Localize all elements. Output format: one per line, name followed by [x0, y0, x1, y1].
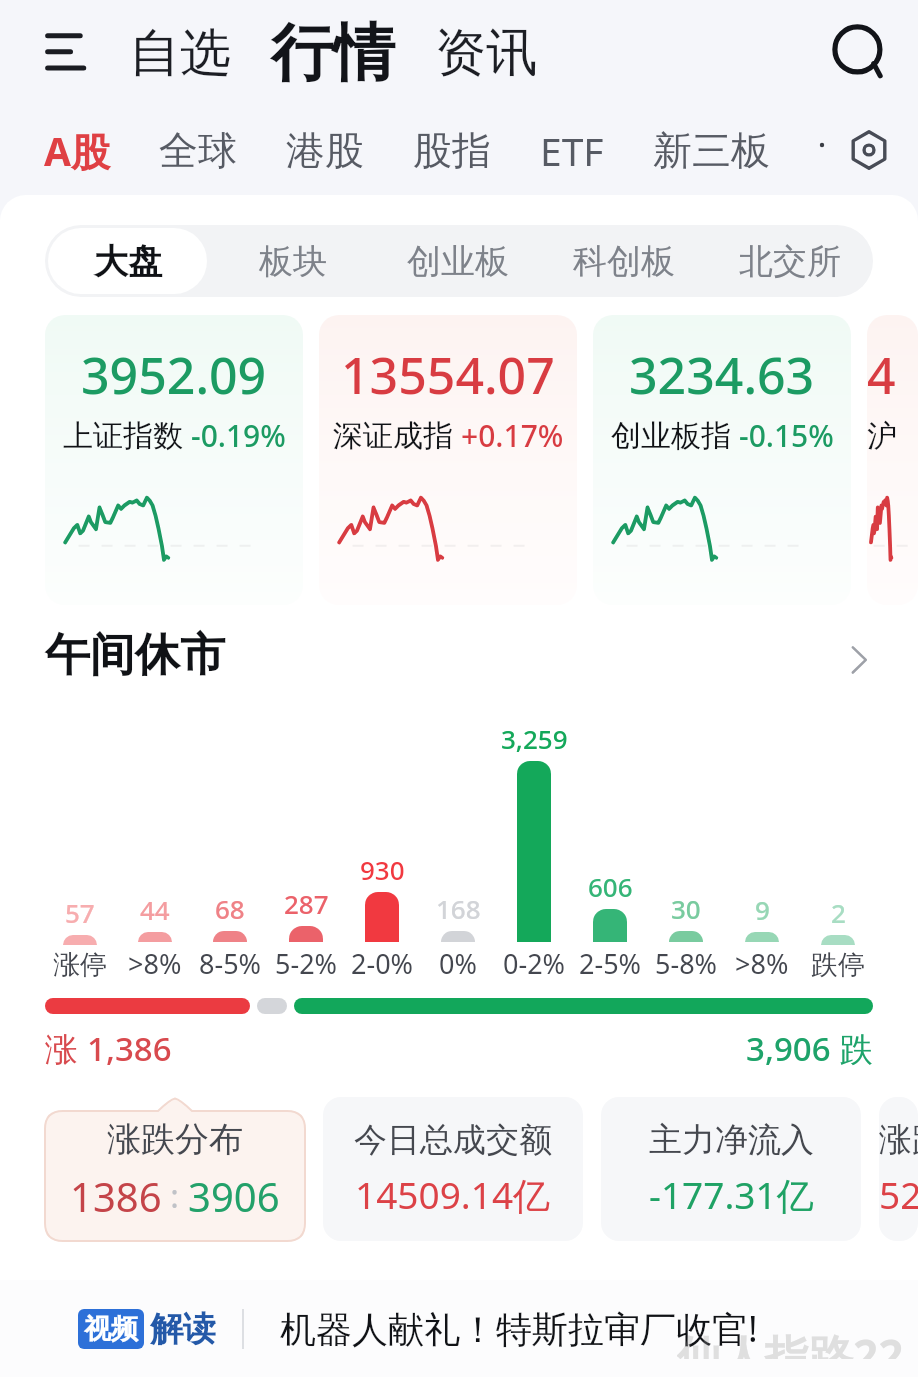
staticText: 创业板指	[611, 417, 731, 455]
button[interactable]: 涨跌停	[879, 1097, 918, 1241]
staticText: 57	[65, 895, 95, 930]
staticText: 3234.63	[629, 341, 815, 409]
button[interactable]: 3952.09	[45, 315, 303, 605]
staticText: 大盘	[94, 240, 162, 283]
staticText: 午间休市	[45, 627, 225, 684]
staticText: 全球	[159, 126, 237, 175]
staticText: -177.31亿	[649, 1169, 814, 1220]
staticText: 3952.09	[81, 341, 267, 409]
button[interactable]: 大盘	[48, 228, 207, 294]
staticText: 1386	[70, 1169, 162, 1223]
button[interactable]: Search	[826, 18, 896, 88]
staticText: 2	[831, 895, 846, 930]
staticText: 3906	[188, 1169, 280, 1223]
button[interactable]: 港股	[275, 118, 375, 183]
staticText: 科创板	[573, 240, 675, 283]
staticText: 跌	[831, 1026, 873, 1071]
staticText: ETF	[540, 124, 604, 177]
button[interactable]: ETF	[529, 116, 615, 185]
staticText: :	[162, 1174, 188, 1218]
staticText: 创业板	[407, 240, 509, 283]
staticText: 3,259	[501, 721, 568, 756]
staticText: 机器人献礼！特斯拉审厂收官!	[280, 1304, 758, 1353]
staticText: 0%	[439, 945, 477, 982]
staticText: 52:3	[879, 1169, 918, 1219]
staticText: 930	[360, 852, 405, 887]
staticText: 13554.07	[341, 341, 555, 409]
staticText: >8%	[128, 945, 182, 982]
staticText: 北交所	[739, 240, 841, 283]
staticText: 视频	[84, 1312, 138, 1346]
staticText: 深证成指	[333, 417, 453, 455]
staticText: 仙人指路22	[677, 1325, 904, 1359]
staticText: 行情	[271, 14, 395, 92]
staticText: 14509.14亿	[355, 1169, 551, 1220]
staticText: 上证指数	[63, 417, 183, 455]
staticText: 1,386	[87, 1026, 172, 1071]
staticText: 3,906	[746, 1026, 831, 1071]
button[interactable]: 资讯	[429, 15, 543, 91]
staticText: 解读	[150, 1308, 216, 1350]
staticText: 今日总成交额	[354, 1119, 552, 1161]
button[interactable]: 3234.63	[593, 315, 851, 605]
staticText: 涨停	[53, 948, 107, 982]
button[interactable]: A股	[33, 116, 121, 185]
button[interactable]: Settings	[844, 125, 894, 175]
staticText: 涨跌停	[879, 1119, 918, 1161]
staticText: 板块	[259, 240, 327, 283]
button[interactable]: 今日总成交额	[323, 1097, 583, 1241]
staticText: 新三板	[653, 126, 770, 175]
button[interactable]: 涨跌分布	[45, 1097, 305, 1241]
staticText: 自选	[129, 21, 231, 85]
staticText: 30	[671, 891, 701, 926]
button[interactable]: 午间休市	[45, 605, 873, 705]
button[interactable]: 全球	[148, 118, 248, 183]
button[interactable]: 创业板	[378, 228, 538, 294]
button[interactable]: 视频	[0, 1280, 918, 1377]
staticText: 2-5%	[579, 945, 642, 982]
button[interactable]: 新三板	[642, 118, 781, 183]
staticText: 港股	[286, 126, 364, 175]
staticText: 涨	[45, 1026, 87, 1071]
staticText: 股指	[413, 126, 491, 175]
button[interactable]: 行情	[267, 12, 399, 94]
staticText: 9	[755, 892, 770, 927]
staticText: -0.15%	[739, 415, 834, 456]
staticText: 8-5%	[199, 945, 262, 982]
staticText: 跌停	[811, 948, 865, 982]
staticText: 68	[215, 891, 245, 926]
staticText: 2-0%	[351, 945, 414, 982]
staticText: 4123.55	[867, 341, 918, 409]
staticText: 主力净流入	[649, 1119, 814, 1161]
button[interactable]: 板块	[213, 228, 372, 294]
staticText: A股	[44, 124, 110, 177]
staticText: 5-2%	[275, 945, 338, 982]
button[interactable]: 北交所	[710, 228, 870, 294]
staticText: 沪深300	[867, 417, 918, 455]
staticText: >8%	[735, 945, 789, 982]
staticText: 287	[284, 886, 329, 921]
button[interactable]: 科创板	[544, 228, 704, 294]
staticText: 涨跌分布	[107, 1118, 243, 1161]
button[interactable]: 自选	[123, 15, 237, 91]
button[interactable]: 股指	[402, 118, 502, 183]
staticText: 资讯	[435, 21, 537, 85]
button[interactable]: Menu	[39, 25, 95, 81]
button[interactable]: 4123.55	[867, 315, 918, 605]
button[interactable]: 主力净流入	[601, 1097, 861, 1241]
staticText: 5-8%	[655, 945, 718, 982]
staticText: -0.19%	[191, 415, 286, 456]
staticText: 606	[588, 869, 633, 904]
staticText: 168	[436, 891, 481, 926]
button[interactable]: 13554.07	[319, 315, 577, 605]
staticText: 44	[140, 892, 170, 927]
staticText: 0-2%	[503, 945, 566, 982]
staticText: +0.17%	[461, 415, 564, 456]
